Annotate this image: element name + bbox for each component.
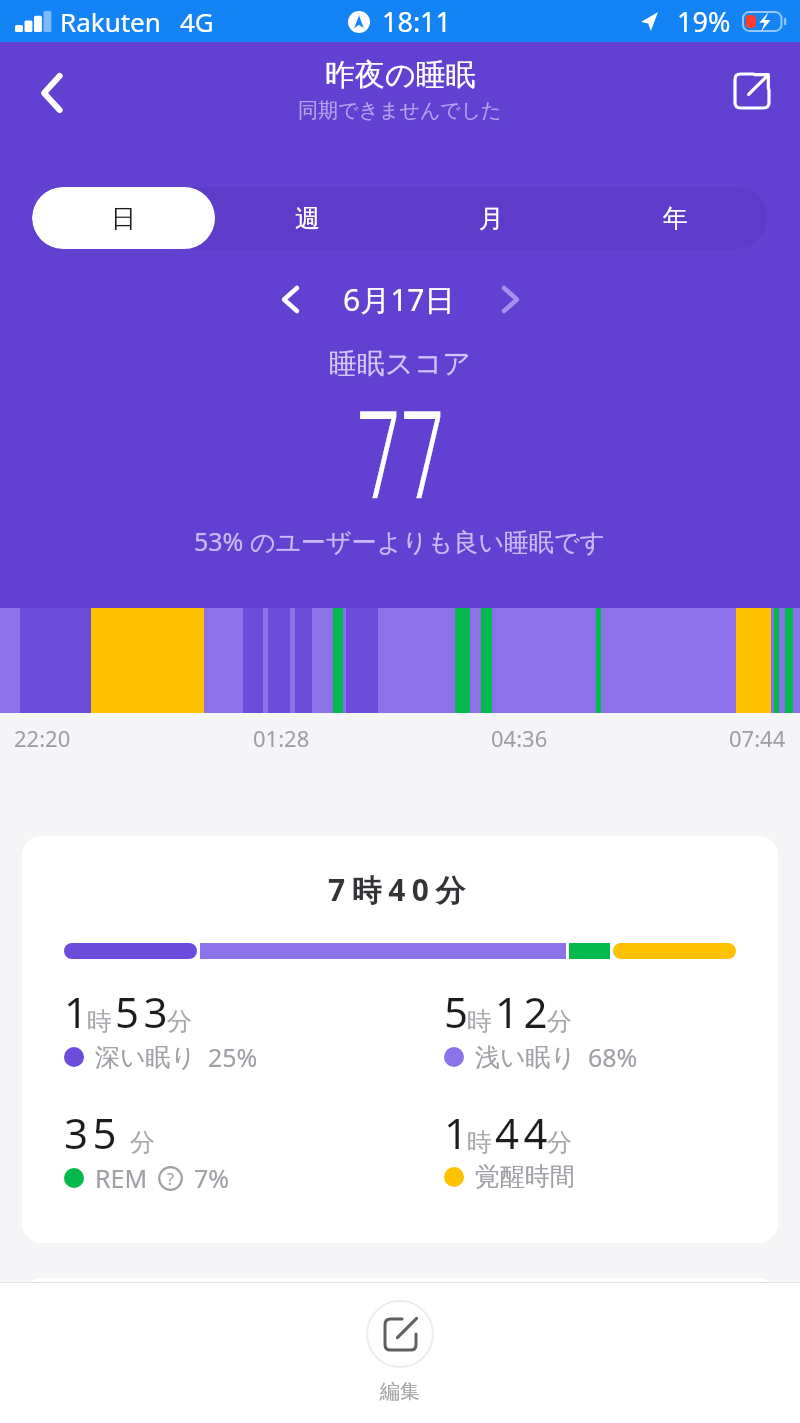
button[interactable]: Previous day (266, 275, 314, 323)
staticText: REM (95, 1161, 148, 1195)
staticText: 浅い眠り (475, 1042, 577, 1073)
staticText: 深い眠り (95, 1042, 197, 1073)
staticText: 分 (167, 1006, 192, 1037)
staticText: 35 (64, 1104, 122, 1161)
staticText: 7時40分 (328, 869, 472, 910)
staticText: 日 (111, 203, 136, 234)
staticText: 同期できませんでした (298, 98, 502, 123)
button[interactable]: Next day (486, 275, 534, 323)
staticText: 覚醒時間 (475, 1161, 575, 1192)
staticText: 19% (677, 3, 731, 40)
button[interactable]: 週 (215, 187, 399, 249)
staticText: 53 (115, 983, 173, 1040)
staticText: 04:36 (491, 723, 548, 753)
staticText: 22:20 (14, 723, 71, 753)
button[interactable]: 月 (399, 187, 583, 249)
staticText: 12 (495, 983, 553, 1040)
staticText: 6月17日 (343, 279, 455, 320)
staticText: 分 (130, 1127, 155, 1158)
staticText: 1 (444, 1104, 473, 1161)
staticText: 68% (588, 1040, 638, 1074)
staticText: 編集 (380, 1379, 420, 1404)
staticText: Rakuten (60, 4, 161, 39)
staticText: 時 (467, 1006, 492, 1037)
button[interactable]: Share (724, 65, 780, 121)
staticText: 月 (479, 203, 504, 234)
staticText: 5 (444, 983, 473, 1040)
staticText: 年 (663, 203, 688, 234)
staticText: 睡眠スコア (329, 346, 471, 381)
staticText: 分 (547, 1127, 572, 1158)
staticText: 77 (356, 361, 445, 498)
staticText: 4G (180, 4, 214, 39)
staticText: 分 (547, 1006, 572, 1037)
staticText: 時 (467, 1127, 492, 1158)
staticText: 1 (64, 983, 93, 1040)
staticText: 07:44 (729, 723, 786, 753)
staticText: 時 (87, 1006, 112, 1037)
staticText: 7% (194, 1161, 230, 1195)
staticText: 18:11 (382, 3, 452, 40)
button[interactable]: 編集 (344, 1299, 456, 1405)
button[interactable]: 年 (583, 187, 767, 249)
button[interactable]: 日 (32, 187, 215, 249)
button[interactable]: Back (24, 65, 80, 121)
staticText: 週 (295, 203, 320, 234)
staticText: 昨夜の睡眠 (325, 56, 476, 94)
staticText: 44 (495, 1104, 553, 1161)
staticText: 53% のユーザーよりも良い睡眠です (194, 524, 606, 558)
staticText: 01:28 (253, 723, 310, 753)
staticText: ? (167, 1168, 174, 1190)
staticText: 25% (208, 1040, 258, 1074)
